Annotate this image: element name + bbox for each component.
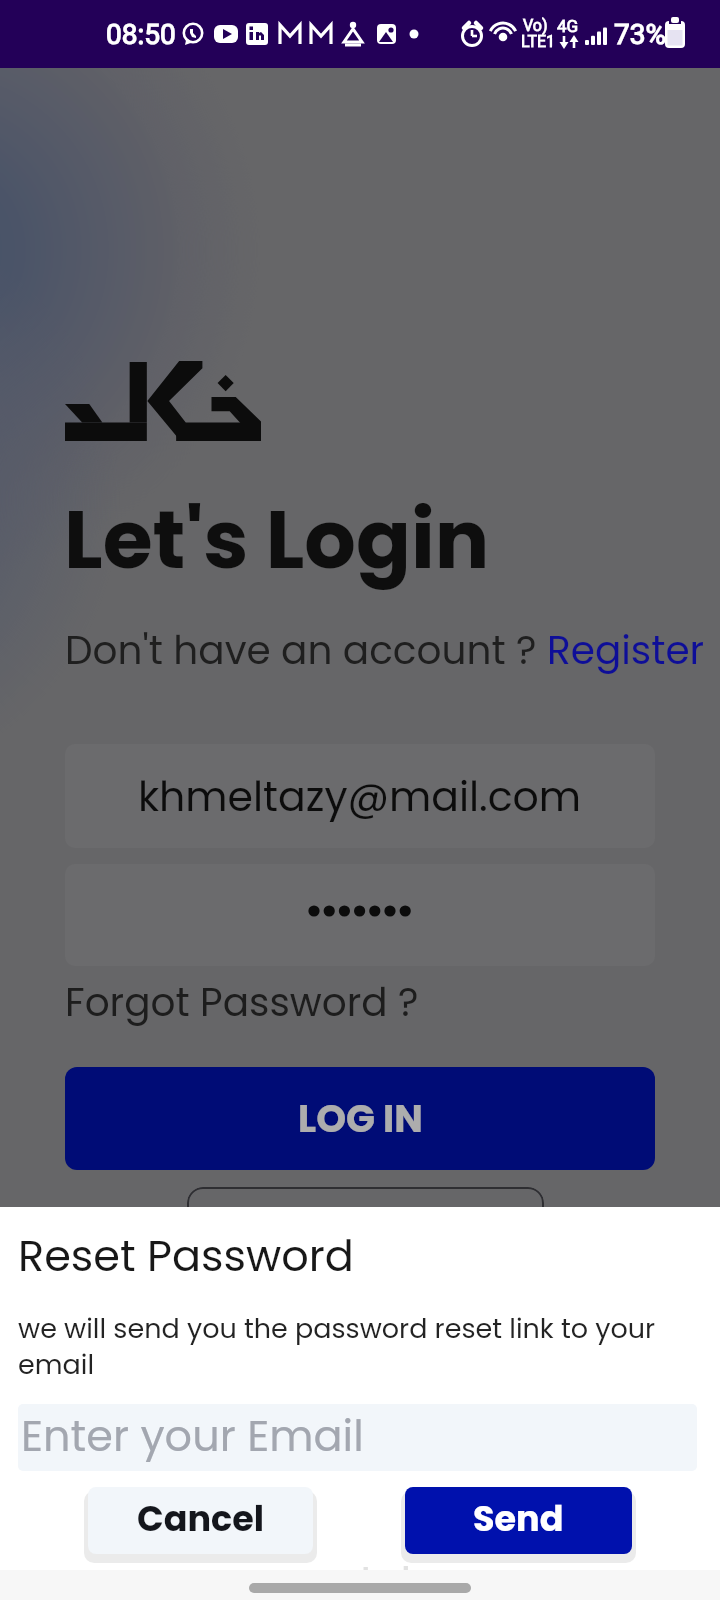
staticText: 73%: [614, 18, 666, 51]
staticText: Cancel: [137, 1494, 265, 1543]
staticText: LTE1: [521, 32, 556, 51]
staticText: Vo): [523, 16, 548, 35]
other: Home: [249, 1583, 471, 1593]
button[interactable]: Cancel: [88, 1487, 313, 1554]
button[interactable]: Send: [405, 1487, 632, 1554]
button[interactable]: Enter your Email: [18, 1404, 697, 1471]
button[interactable]: [65, 864, 655, 966]
staticText: 08:50: [106, 18, 176, 51]
staticText: Don't have an account ?: [65, 623, 547, 678]
staticText: khmeltazy@mail.com: [138, 768, 582, 825]
button[interactable]: Register: [547, 623, 705, 678]
button[interactable]: Forgot Password ?: [65, 975, 419, 1030]
staticText: 4G: [557, 16, 579, 36]
staticText: we will send you the password reset link…: [18, 1310, 708, 1383]
button[interactable]: khmeltazy@mail.com: [65, 744, 655, 848]
staticText: Enter your Email: [21, 1406, 364, 1466]
staticText: Reset Password: [18, 1226, 354, 1286]
staticText: Let's Login: [64, 483, 490, 596]
staticText: LOG IN: [298, 1092, 423, 1145]
staticText: mostaql.com: [310, 1559, 469, 1591]
button[interactable]: [187, 1187, 544, 1277]
staticText: Send: [473, 1494, 564, 1543]
button[interactable]: LOG IN: [65, 1067, 655, 1170]
